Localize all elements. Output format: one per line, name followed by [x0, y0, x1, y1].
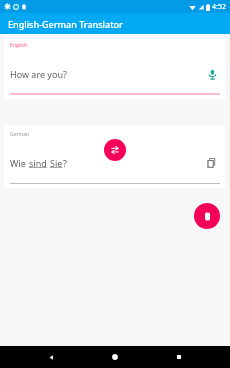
- button[interactable]: Voice input: [204, 66, 220, 82]
- button[interactable]: Copy translation: [204, 155, 220, 171]
- button[interactable]: English: [4, 37, 226, 99]
- staticText: English: [10, 42, 28, 49]
- staticText: Wie: [10, 157, 29, 169]
- staticText: 4:52: [212, 2, 226, 12]
- staticText: Sie: [50, 157, 63, 169]
- button[interactable]: Back: [19, 346, 83, 368]
- staticText: ?: [63, 157, 67, 169]
- staticText: German: [10, 131, 30, 138]
- button[interactable]: Home: [83, 346, 147, 368]
- staticText: How are you?: [10, 68, 204, 80]
- button[interactable]: Recent apps: [147, 346, 211, 368]
- staticText: English-German Translator: [8, 18, 123, 30]
- button[interactable]: Speak translation: [194, 203, 220, 229]
- button[interactable]: Swap languages: [104, 139, 126, 161]
- button[interactable]: German: [4, 126, 226, 188]
- staticText: sind: [29, 157, 47, 169]
